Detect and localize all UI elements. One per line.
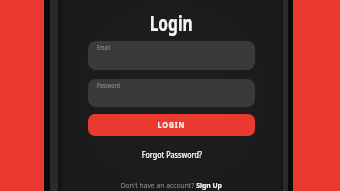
staticText: Email bbox=[97, 43, 110, 53]
button[interactable]: Forgot Password? bbox=[142, 149, 202, 160]
staticText: Login bbox=[150, 9, 193, 38]
button[interactable]: Password bbox=[88, 79, 255, 107]
button[interactable]: Email bbox=[88, 41, 255, 70]
button[interactable]: Sign Up bbox=[196, 180, 222, 190]
staticText: Don't have an account? bbox=[121, 180, 196, 190]
staticText: LOGIN bbox=[157, 119, 185, 131]
staticText: Password bbox=[97, 81, 120, 91]
button[interactable]: LOGIN bbox=[88, 114, 255, 136]
